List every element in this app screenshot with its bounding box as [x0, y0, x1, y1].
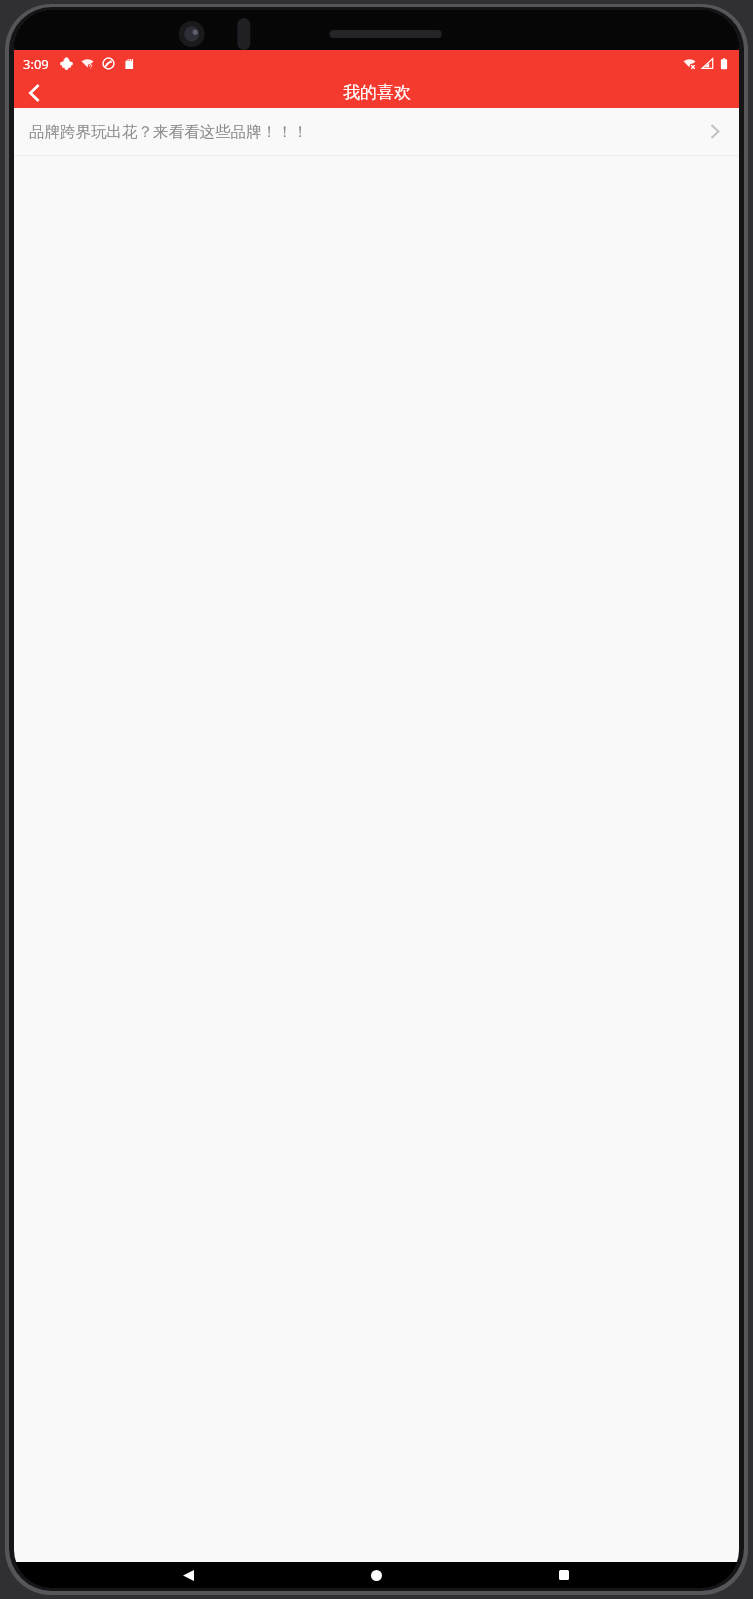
button[interactable]: Recent apps — [551, 1562, 577, 1588]
button[interactable]: Back — [14, 77, 56, 108]
staticText: 品牌跨界玩出花？来看看这些品牌！！！ — [29, 122, 706, 142]
staticText: 3:09 — [23, 55, 49, 73]
button[interactable]: Home — [363, 1562, 389, 1588]
button[interactable]: 品牌跨界玩出花？来看看这些品牌！！！ — [14, 108, 739, 155]
button[interactable]: Back — [175, 1562, 201, 1588]
staticText: 我的喜欢 — [343, 82, 411, 103]
